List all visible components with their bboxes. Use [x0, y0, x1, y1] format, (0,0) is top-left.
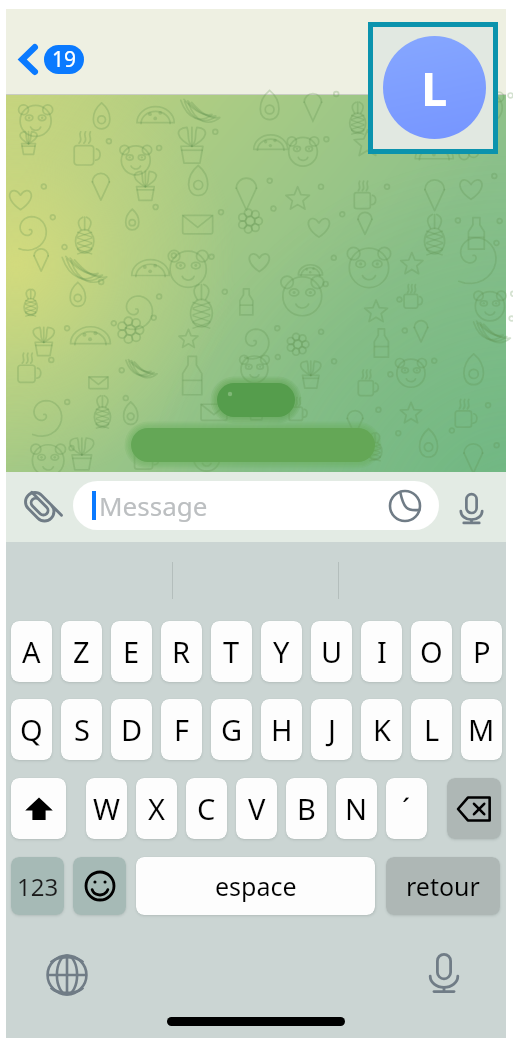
staticText: Z	[73, 632, 90, 671]
button[interactable]: F	[161, 699, 202, 760]
staticText: S	[74, 710, 90, 749]
staticText: Y	[273, 632, 290, 671]
staticText: U	[321, 632, 343, 671]
button[interactable]: Voice input	[419, 948, 469, 998]
staticText: 123	[17, 870, 59, 903]
staticText: R	[172, 632, 191, 671]
button[interactable]: Message	[73, 481, 439, 530]
button[interactable]: W	[86, 778, 127, 839]
button[interactable]: Stickers	[385, 486, 425, 526]
button[interactable]: Q	[11, 699, 52, 760]
button[interactable]: X	[136, 778, 177, 839]
button[interactable]: G	[211, 699, 252, 760]
staticText: T	[223, 632, 240, 671]
staticText: P	[473, 632, 491, 671]
button[interactable]: J	[311, 699, 352, 760]
button[interactable]: E	[111, 621, 152, 682]
button[interactable]: M	[461, 699, 502, 760]
button[interactable]: V	[236, 778, 277, 839]
button[interactable]: Attach file	[18, 485, 64, 531]
button[interactable]: Emoji	[73, 857, 126, 915]
button[interactable]: U	[311, 621, 352, 682]
staticText: I	[377, 632, 387, 671]
staticText: O	[420, 632, 443, 671]
button[interactable]: T	[211, 621, 252, 682]
staticText: K	[373, 710, 391, 749]
button[interactable]: S	[61, 699, 102, 760]
staticText: retour	[406, 869, 480, 903]
button[interactable]: K	[361, 699, 402, 760]
staticText: G	[221, 710, 243, 749]
button[interactable]: Z	[61, 621, 102, 682]
staticText: J	[328, 710, 336, 749]
button[interactable]: P	[461, 621, 502, 682]
staticText: L	[421, 56, 448, 120]
staticText: V	[248, 789, 266, 828]
button[interactable]: Profile avatar	[383, 36, 486, 139]
staticText: C	[197, 789, 216, 828]
staticText: X	[148, 789, 165, 828]
button[interactable]: R	[161, 621, 202, 682]
button[interactable]: ´	[386, 778, 427, 839]
staticText: W	[93, 789, 120, 828]
staticText: 19	[52, 45, 77, 74]
button[interactable]: A	[11, 621, 52, 682]
staticText: N	[345, 789, 368, 828]
button[interactable]: Back, 19 unread	[15, 40, 88, 79]
button[interactable]: Record voice message	[448, 485, 494, 531]
staticText: ´	[402, 789, 411, 828]
button[interactable]: 123	[11, 857, 64, 915]
staticText: A	[22, 632, 41, 671]
button[interactable]: N	[336, 778, 377, 839]
button[interactable]: D	[111, 699, 152, 760]
button[interactable]: retour	[386, 857, 500, 915]
staticText: L	[424, 710, 440, 749]
button[interactable]: H	[261, 699, 302, 760]
staticText: Q	[20, 710, 43, 749]
button[interactable]: Switch keyboard language	[42, 950, 92, 1000]
button[interactable]: Backspace	[447, 778, 501, 839]
button[interactable]: espace	[136, 857, 375, 915]
staticText: B	[297, 789, 316, 828]
button[interactable]: L	[411, 699, 452, 760]
button[interactable]: Y	[261, 621, 302, 682]
staticText: F	[174, 710, 190, 749]
staticText: espace	[215, 869, 297, 903]
staticText: Message	[99, 488, 208, 523]
staticText: E	[123, 632, 140, 671]
staticText: M	[468, 710, 495, 749]
button[interactable]: Shift	[11, 778, 66, 839]
button[interactable]: C	[186, 778, 227, 839]
staticText: D	[121, 710, 143, 749]
staticText: H	[271, 710, 293, 749]
button[interactable]: B	[286, 778, 327, 839]
button[interactable]: O	[411, 621, 452, 682]
button[interactable]: I	[361, 621, 402, 682]
